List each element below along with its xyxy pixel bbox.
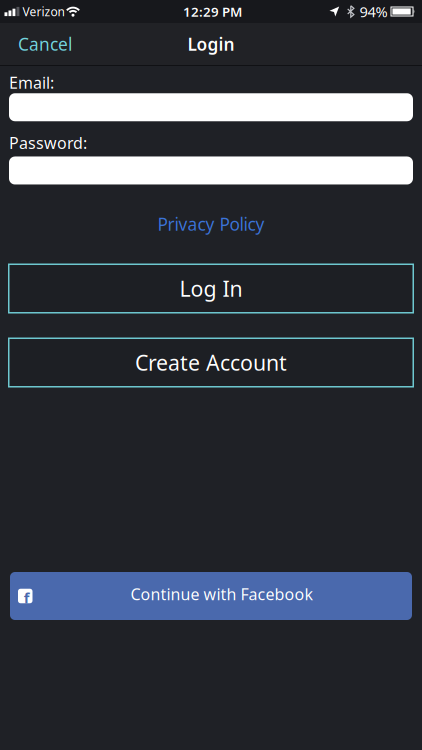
staticText: Email: xyxy=(9,72,54,93)
button[interactable]: Privacy Policy xyxy=(0,212,422,235)
staticText: Continue with Facebook xyxy=(130,583,313,605)
button[interactable]: Create Account xyxy=(8,337,414,387)
button[interactable]: Email xyxy=(0,93,422,121)
staticText: Login xyxy=(187,32,234,55)
button[interactable]: Password xyxy=(0,156,422,184)
staticText: Cancel xyxy=(18,32,72,55)
staticText: 12:29 PM xyxy=(183,3,242,20)
staticText: Create Account xyxy=(135,348,287,377)
staticText: 94% xyxy=(359,2,387,21)
staticText: f xyxy=(24,588,30,608)
staticText: Verizon xyxy=(22,3,64,19)
staticText: Password: xyxy=(9,132,87,153)
button[interactable]: Log In xyxy=(8,263,414,313)
staticText: Privacy Policy xyxy=(157,212,264,235)
button[interactable]: Continue with Facebook xyxy=(10,572,412,620)
button[interactable]: Cancel xyxy=(0,32,72,55)
staticText: Log In xyxy=(179,274,242,303)
